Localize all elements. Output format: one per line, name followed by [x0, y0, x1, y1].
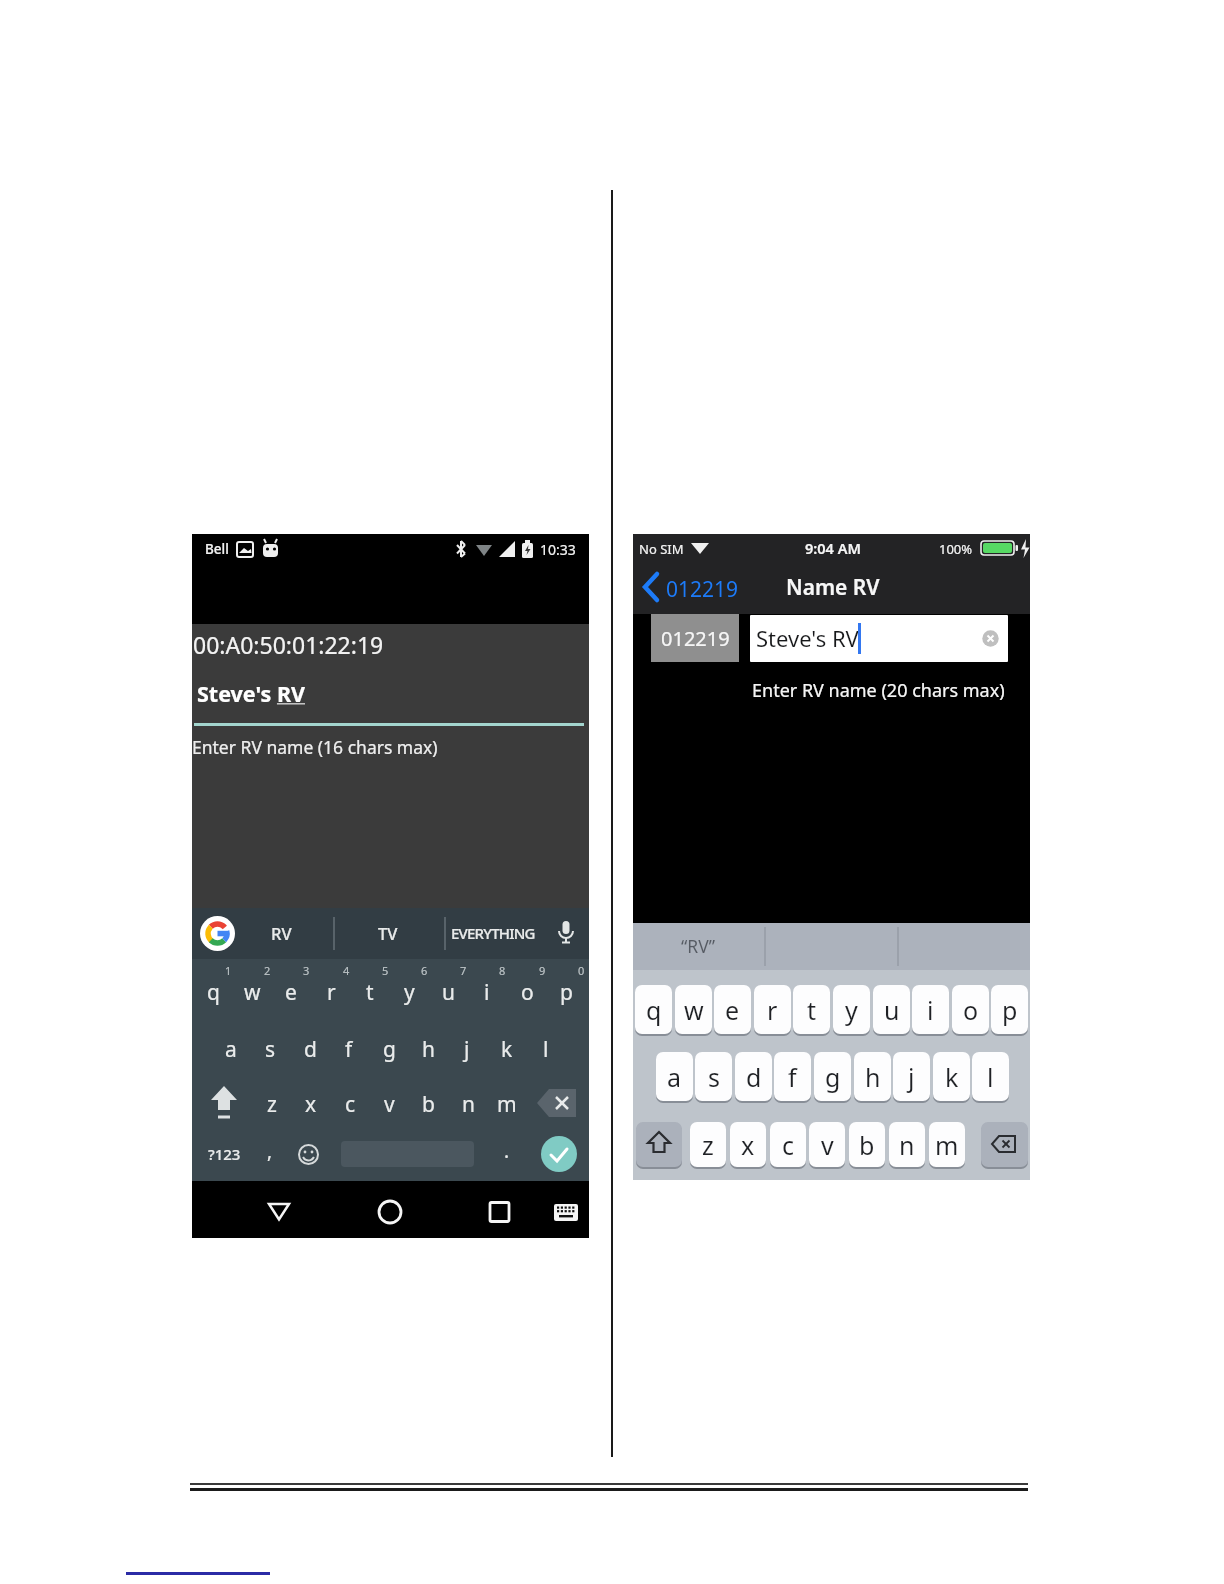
button[interactable]: b	[849, 1122, 885, 1167]
button[interactable]	[641, 572, 663, 604]
button[interactable]: .	[437, 1129, 577, 1173]
button[interactable]: r	[312, 970, 350, 1014]
button[interactable]: z	[690, 1122, 726, 1167]
staticText: Name RV	[786, 573, 880, 602]
staticText: c	[345, 1090, 356, 1119]
button[interactable]: q	[635, 985, 672, 1034]
button[interactable]: u	[873, 985, 910, 1034]
staticText: b	[859, 1128, 875, 1162]
button[interactable]: u	[429, 970, 467, 1014]
staticText: t	[807, 993, 817, 1027]
button[interactable]	[206, 1084, 242, 1126]
staticText: k	[945, 1060, 959, 1094]
button[interactable]: a	[656, 1052, 693, 1101]
staticText: e	[285, 978, 297, 1007]
staticText: No SIM	[639, 540, 684, 558]
button[interactable]: i	[912, 985, 949, 1034]
button[interactable]: q	[194, 970, 232, 1014]
button[interactable]: n	[889, 1122, 925, 1167]
staticText: v	[384, 1090, 395, 1119]
button[interactable]	[541, 1136, 577, 1172]
button[interactable]: n	[449, 1082, 487, 1126]
button[interactable]	[298, 1144, 319, 1165]
button[interactable]: x	[730, 1122, 766, 1167]
button[interactable]: h	[409, 1027, 447, 1071]
button[interactable]: m	[488, 1082, 526, 1126]
button[interactable]: Steve's RV	[197, 679, 306, 708]
button[interactable]: d	[291, 1027, 329, 1071]
button[interactable]: r	[754, 985, 791, 1034]
staticText: y	[404, 978, 415, 1007]
button[interactable]: z	[253, 1082, 291, 1126]
button[interactable]	[636, 1122, 682, 1167]
button[interactable]: j	[448, 1027, 486, 1071]
button[interactable]: j	[893, 1052, 930, 1101]
button[interactable]: w	[675, 985, 712, 1034]
button[interactable]: f	[330, 1027, 368, 1071]
button[interactable]: c	[770, 1122, 806, 1167]
button[interactable]: o	[508, 970, 546, 1014]
button[interactable]	[542, 1189, 586, 1233]
button[interactable]: v	[370, 1082, 408, 1126]
button[interactable]: l	[527, 1027, 565, 1071]
button[interactable]: g	[814, 1052, 851, 1101]
button[interactable]	[200, 916, 235, 951]
button[interactable]: TV	[318, 911, 458, 955]
button[interactable]	[257, 1189, 301, 1233]
button[interactable]: l	[972, 1052, 1009, 1101]
button[interactable]: ,	[200, 1129, 340, 1173]
button[interactable]: i	[468, 970, 506, 1014]
staticText: b	[422, 1090, 435, 1119]
button[interactable]: t	[793, 985, 830, 1034]
button[interactable]: p	[991, 985, 1028, 1034]
staticText: e	[725, 993, 740, 1027]
button[interactable]: b	[409, 1082, 447, 1126]
button[interactable]: x	[292, 1082, 330, 1126]
staticText: d	[746, 1060, 762, 1094]
button[interactable]: k	[933, 1052, 970, 1101]
button[interactable]: y	[390, 970, 428, 1014]
button[interactable]: c	[331, 1082, 369, 1126]
staticText: c	[782, 1128, 795, 1162]
button[interactable]	[477, 1189, 521, 1233]
button[interactable]: RV	[211, 911, 351, 955]
button[interactable]: f	[774, 1052, 811, 1101]
button[interactable]: t	[351, 970, 389, 1014]
staticText: z	[702, 1128, 714, 1162]
button[interactable]: “RV”	[628, 924, 768, 968]
staticText: 8	[499, 963, 506, 978]
staticText: g	[825, 1060, 841, 1094]
button[interactable]: w	[233, 970, 271, 1014]
button[interactable]	[981, 1122, 1028, 1167]
button[interactable]: o	[952, 985, 989, 1034]
staticText: “RV”	[681, 934, 715, 958]
button[interactable]: s	[695, 1052, 732, 1101]
button[interactable]: v	[809, 1122, 845, 1167]
button[interactable]: ?123	[154, 1132, 294, 1176]
button[interactable]: EVERYTHING	[423, 911, 563, 955]
button[interactable]	[368, 1189, 412, 1233]
staticText: p	[1002, 993, 1018, 1027]
button[interactable]: a	[212, 1027, 250, 1071]
button[interactable]: e	[272, 970, 310, 1014]
button[interactable]	[554, 919, 578, 949]
staticText: 100%	[939, 540, 973, 558]
staticText: g	[383, 1035, 396, 1064]
button[interactable]: s	[251, 1027, 289, 1071]
button[interactable]: d	[735, 1052, 772, 1101]
button[interactable]	[536, 1087, 582, 1121]
button[interactable]: p	[547, 970, 585, 1014]
staticText: q	[207, 978, 220, 1007]
button[interactable]	[750, 615, 1008, 662]
button[interactable]: k	[488, 1027, 526, 1071]
button[interactable]: e	[714, 985, 751, 1034]
button[interactable]: g	[370, 1027, 408, 1071]
button[interactable]: h	[854, 1052, 891, 1101]
button[interactable]: y	[833, 985, 870, 1034]
button[interactable]: m	[929, 1122, 965, 1167]
button[interactable]: 012219	[666, 575, 739, 604]
button[interactable]	[982, 630, 999, 647]
